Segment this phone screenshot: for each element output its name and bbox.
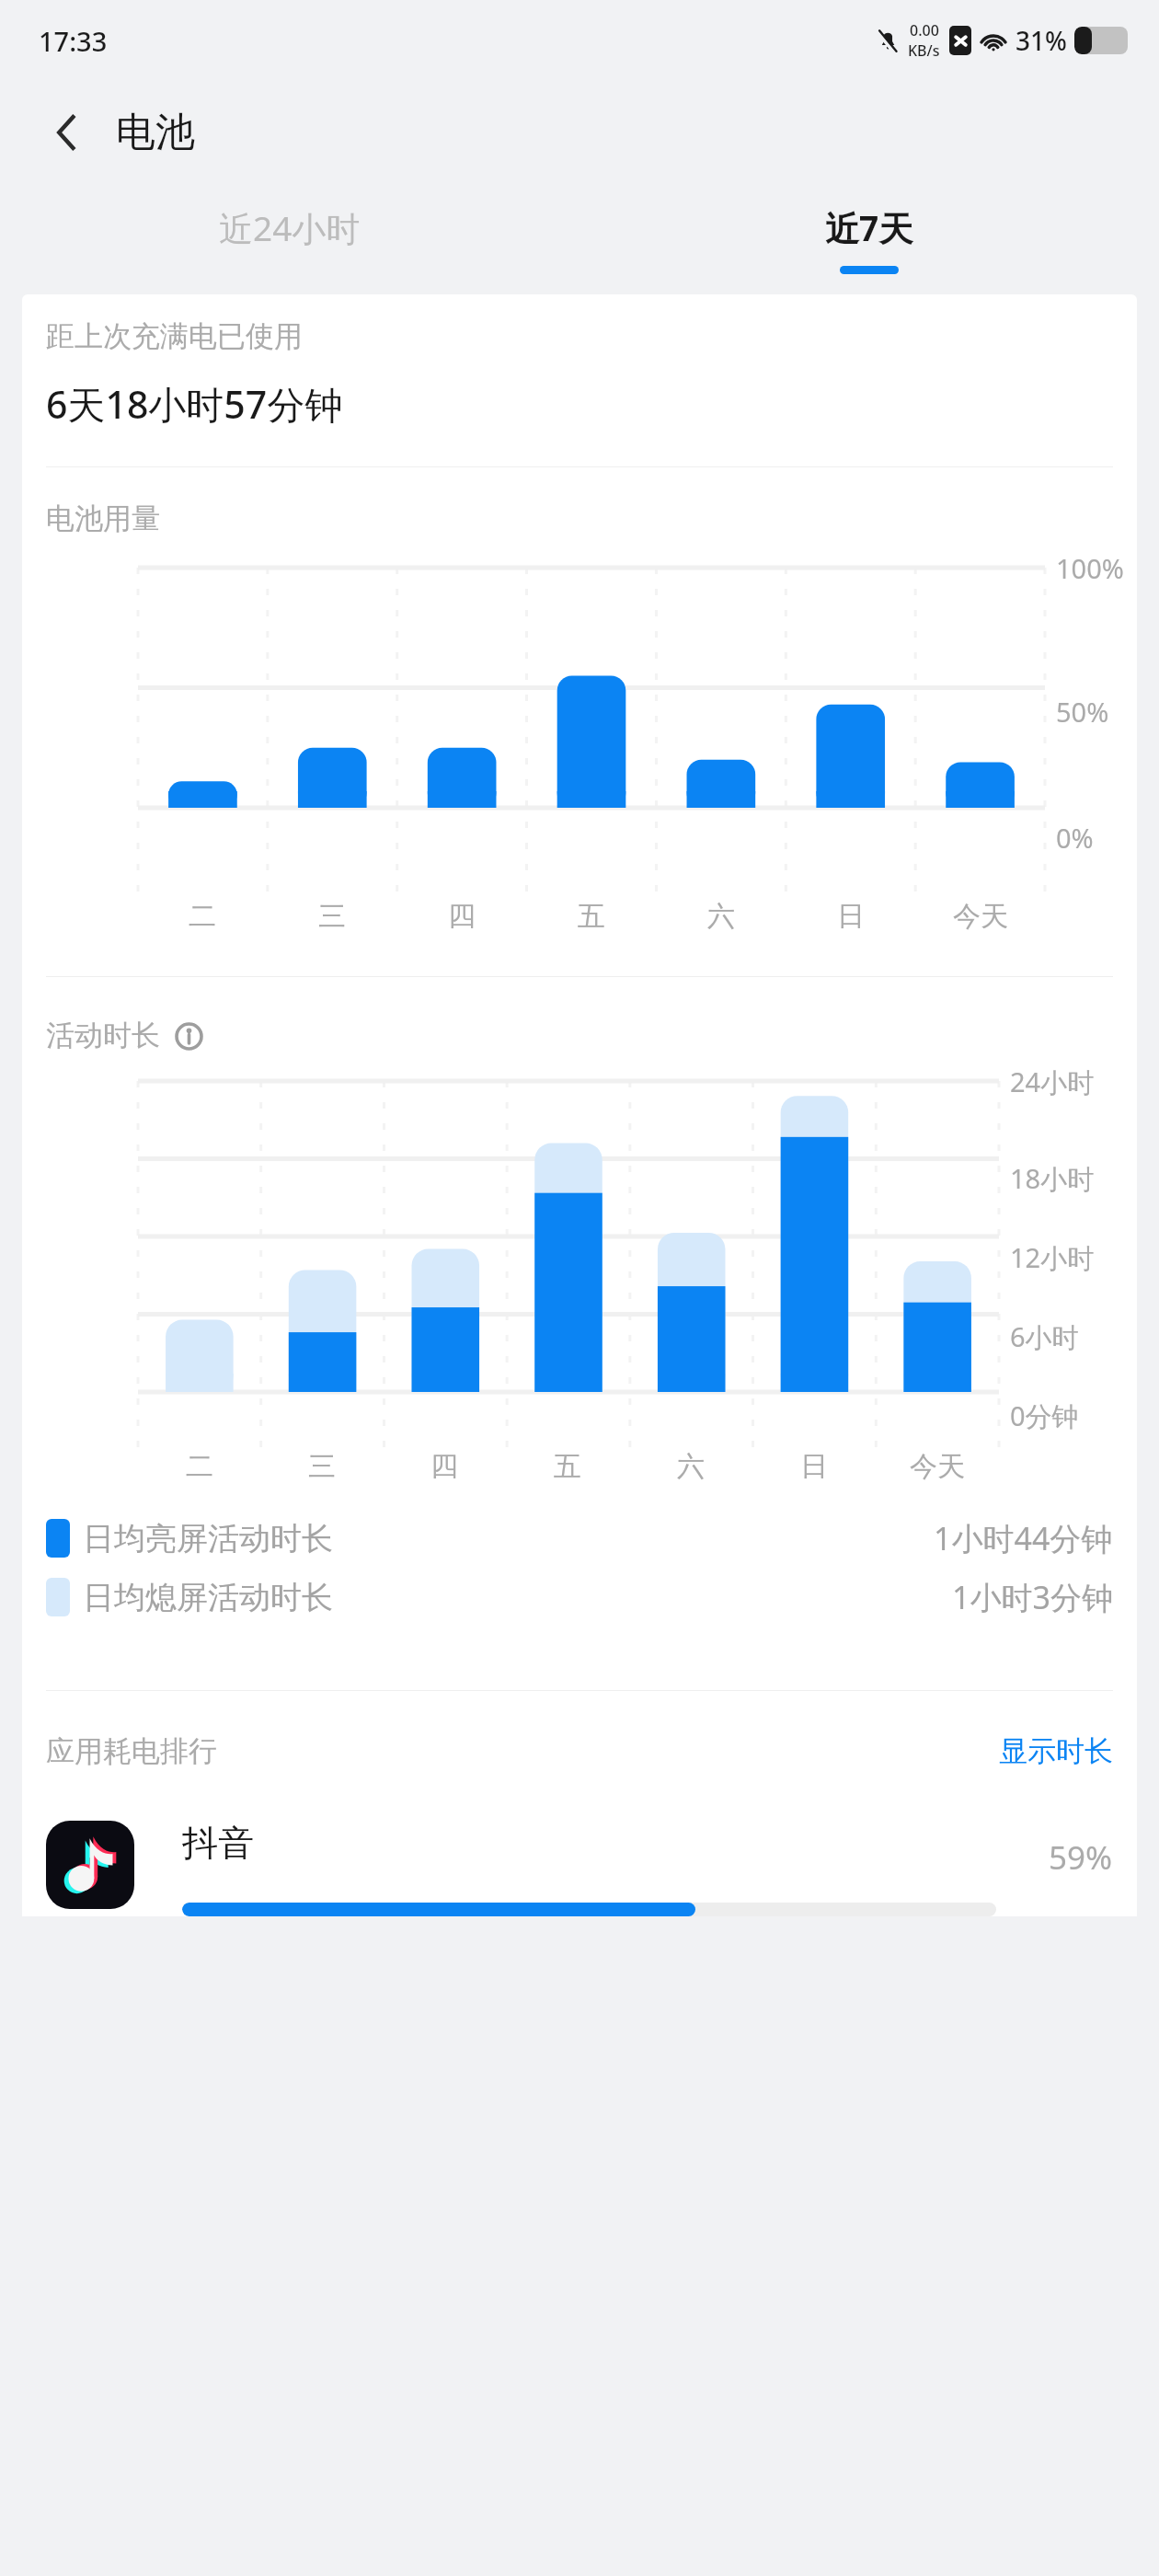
staticText: 今天	[953, 899, 1008, 934]
staticText: 四	[430, 1449, 458, 1484]
staticText: 0%	[1056, 820, 1094, 856]
staticText: 24小时	[1010, 1064, 1095, 1100]
button[interactable]: 近7天	[579, 184, 1159, 294]
staticText: 0.00	[910, 20, 939, 40]
staticText: 18小时	[1010, 1160, 1095, 1197]
staticText: 二	[189, 899, 216, 934]
staticText: 显示时长	[999, 1733, 1113, 1769]
staticText: 四	[448, 899, 476, 934]
staticText: 0分钟	[1010, 1397, 1079, 1434]
staticText: 六	[677, 1449, 705, 1484]
staticText: 电池	[116, 108, 195, 157]
staticText: 近7天	[825, 204, 913, 251]
staticText: 五	[554, 1449, 581, 1484]
staticText: 三	[308, 1449, 336, 1484]
staticText: 今天	[910, 1449, 965, 1484]
staticText: 日	[837, 899, 865, 934]
button[interactable]: Info	[173, 1020, 204, 1052]
staticText: 三	[318, 899, 346, 934]
staticText: 50%	[1056, 694, 1109, 730]
staticText: 17:33	[39, 23, 108, 59]
staticText: 近24小时	[219, 204, 361, 251]
staticText: 1小时3分钟	[952, 1576, 1113, 1618]
staticText: 五	[578, 899, 605, 934]
button[interactable]: 抖音	[46, 1821, 1113, 1916]
button[interactable]: 日均熄屏活动时长	[46, 1576, 1113, 1618]
staticText: 距上次充满电已使用	[46, 318, 303, 354]
staticText: 电池用量	[46, 500, 160, 536]
staticText: 二	[186, 1449, 213, 1484]
staticText: KB/s	[908, 40, 940, 61]
button[interactable]: 日均亮屏活动时长	[46, 1517, 1113, 1559]
staticText: 100%	[1056, 550, 1124, 586]
button[interactable]: 近24小时	[0, 184, 579, 294]
staticText: 12小时	[1010, 1239, 1095, 1276]
staticText: 59%	[1049, 1835, 1113, 1880]
staticText: 日均亮屏活动时长	[83, 1519, 333, 1558]
button[interactable]: Back	[33, 98, 101, 167]
staticText: 1小时44分钟	[934, 1517, 1113, 1559]
staticText: 6天18小时57分钟	[46, 378, 343, 430]
staticText: 六	[707, 899, 735, 934]
staticText: 应用耗电排行	[46, 1733, 217, 1769]
staticText: 日均熄屏活动时长	[83, 1578, 333, 1617]
staticText: 日	[800, 1449, 828, 1484]
staticText: 6小时	[1010, 1318, 1079, 1355]
staticText: 31%	[1016, 23, 1067, 58]
staticText: 抖音	[182, 1821, 254, 1866]
staticText: 活动时长	[46, 1018, 160, 1053]
button[interactable]: 显示时长	[999, 1733, 1113, 1769]
